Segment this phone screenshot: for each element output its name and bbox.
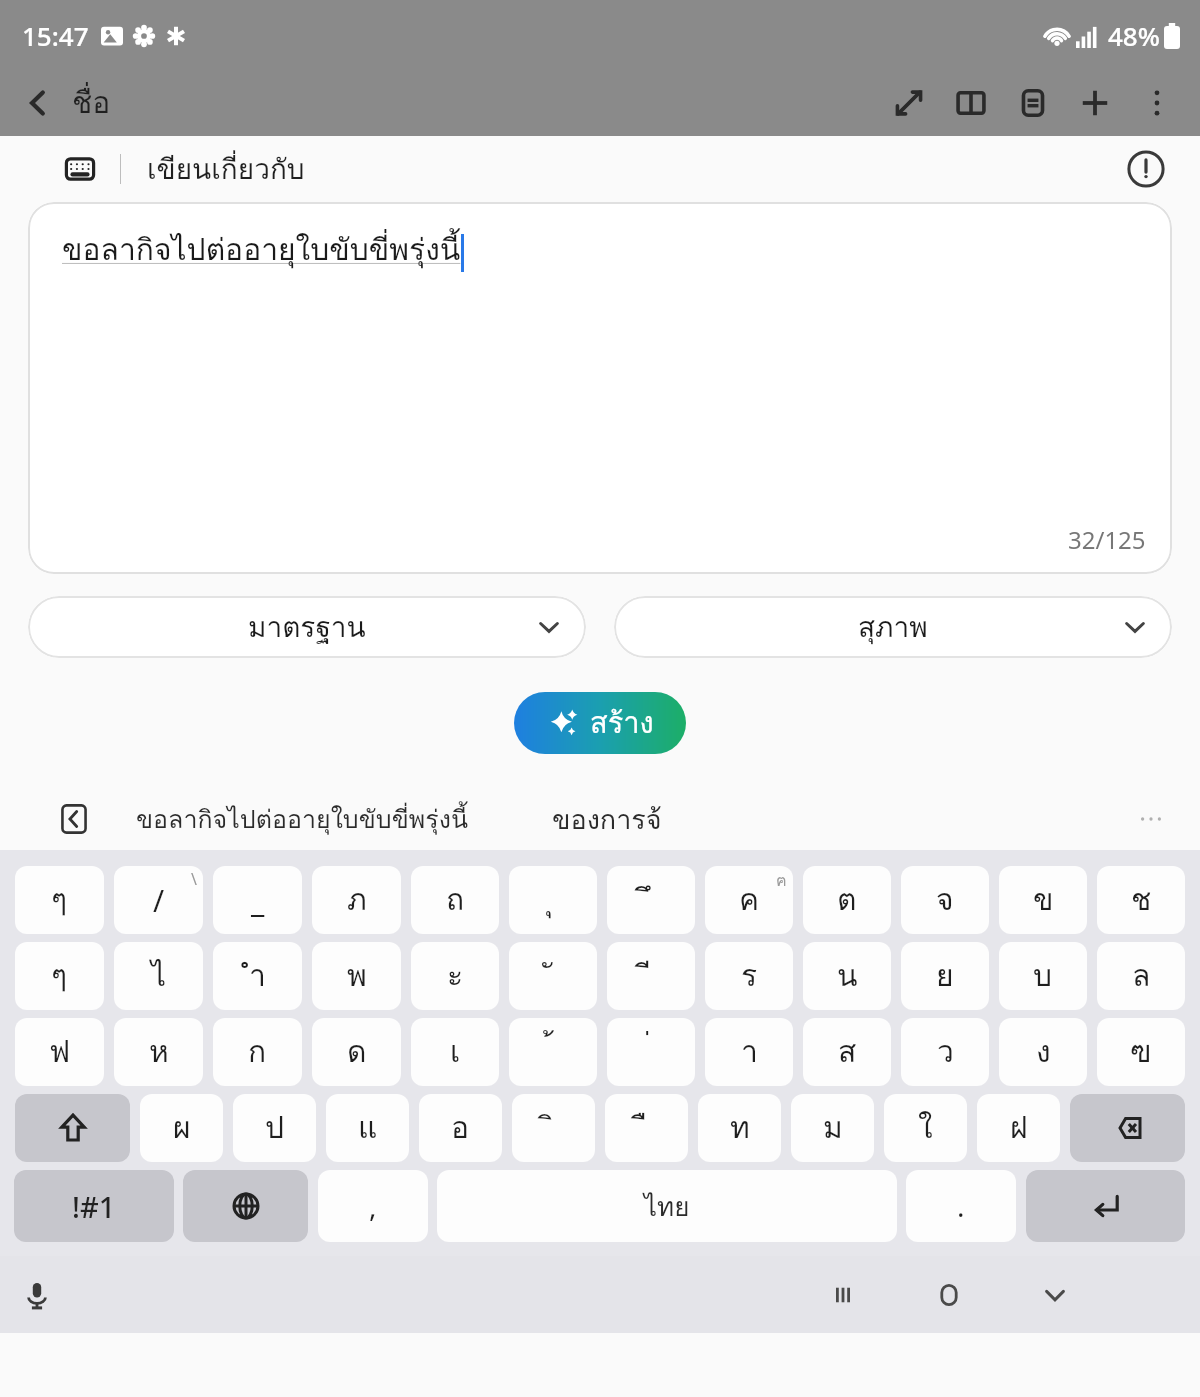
button[interactable]: ฅ [705, 866, 793, 934]
button[interactable]: ุ [509, 866, 597, 934]
button[interactable]: Recent apps [808, 1260, 878, 1330]
button[interactable]: ห [114, 1018, 203, 1086]
button[interactable]: ไทย [437, 1170, 897, 1242]
button[interactable]: สุภาพ [614, 596, 1172, 658]
button[interactable]: Home [914, 1260, 984, 1330]
button[interactable]: Voice input [12, 1270, 62, 1320]
button[interactable]: ใ [884, 1094, 967, 1162]
staticText: _ [251, 880, 265, 921]
staticText: ย [936, 952, 954, 1000]
button[interactable]: ล [1097, 942, 1185, 1010]
button[interactable]: ึ [607, 866, 695, 934]
button[interactable]: ขอลากิจไปต่ออายุใบขับขี่พรุ่งนี้ [136, 799, 468, 839]
button[interactable]: ด [312, 1018, 401, 1086]
button[interactable]: ว [901, 1018, 989, 1086]
staticText: ภ [347, 876, 367, 924]
button[interactable]: _ [213, 866, 302, 934]
button[interactable]: Add [1064, 72, 1126, 134]
button[interactable]: สร้าง [514, 692, 686, 754]
button[interactable]: า [705, 1018, 793, 1086]
button[interactable]: มาตรฐาน [28, 596, 586, 658]
staticText: ๆ [51, 876, 68, 924]
button[interactable]: ต [803, 866, 891, 934]
button[interactable]: ่ [607, 1018, 695, 1086]
button[interactable]: อ [419, 1094, 502, 1162]
button[interactable]: ถ [411, 866, 499, 934]
button[interactable]: ท [698, 1094, 781, 1162]
button[interactable]: ื [605, 1094, 688, 1162]
staticText: เขียนเกี่ยวกับ [147, 147, 305, 192]
button[interactable]: ขอลากิจไปต่ออายุใบขับขี่พรุ่งนี้ [28, 202, 1172, 574]
button[interactable]: , [318, 1170, 428, 1242]
button[interactable]: More options [1126, 72, 1188, 134]
button[interactable]: เ [411, 1018, 499, 1086]
button[interactable]: ำ [213, 942, 302, 1010]
button[interactable]: ไ [114, 942, 203, 1010]
button[interactable]: More suggestions [1126, 794, 1176, 844]
button[interactable]: ส [803, 1018, 891, 1086]
button[interactable]: Back [10, 75, 66, 131]
button[interactable]: Enter [1026, 1170, 1185, 1242]
button[interactable]: ฝ [977, 1094, 1060, 1162]
button[interactable]: ิ [512, 1094, 595, 1162]
staticText: ฟ [49, 1028, 71, 1076]
staticText: ส [838, 1028, 857, 1076]
staticText: ด [347, 1028, 367, 1076]
button[interactable]: Change language [183, 1170, 308, 1242]
staticText: อ [451, 1104, 470, 1152]
button[interactable]: แ [326, 1094, 409, 1162]
button[interactable]: ย [901, 942, 989, 1010]
button[interactable]: พ [312, 942, 401, 1010]
button[interactable]: ง [999, 1018, 1087, 1086]
button[interactable]: ภ [312, 866, 401, 934]
button[interactable]: น [803, 942, 891, 1010]
staticText: ท [730, 1104, 750, 1152]
button[interactable]: ๆ [15, 866, 104, 934]
button[interactable]: ้ [509, 1018, 597, 1086]
button[interactable]: Information [1116, 139, 1176, 199]
button[interactable]: บ [999, 942, 1087, 1010]
button[interactable]: \ [114, 866, 203, 934]
staticText: พ [347, 952, 367, 1000]
staticText: สุภาพ [858, 605, 928, 650]
button[interactable]: ะ [411, 942, 499, 1010]
button[interactable]: Expand [878, 72, 940, 134]
button[interactable]: ป [233, 1094, 316, 1162]
button[interactable]: ฟ [15, 1018, 104, 1086]
staticText: ต [837, 876, 857, 924]
button[interactable]: Hide keyboard [1020, 1260, 1090, 1330]
button[interactable]: ๆ [15, 942, 104, 1010]
button[interactable]: ผ [140, 1094, 223, 1162]
button[interactable]: ั [509, 942, 597, 1010]
staticText: 15:47 [22, 18, 89, 53]
button[interactable]: Shift [15, 1094, 130, 1162]
button[interactable]: ี [607, 942, 695, 1010]
staticText: ถ [446, 876, 465, 924]
staticText: น [837, 952, 858, 1000]
button[interactable]: จ [901, 866, 989, 934]
button[interactable]: ของการจ้ [552, 798, 662, 841]
button[interactable]: ม [791, 1094, 874, 1162]
button[interactable]: List view [1002, 72, 1064, 134]
button[interactable]: Book view [940, 72, 1002, 134]
staticText: ไทย [644, 1186, 690, 1227]
button[interactable]: ช [1097, 866, 1185, 934]
button[interactable]: Previous suggestion [56, 801, 92, 837]
staticText: ม [823, 1104, 843, 1152]
staticText: ฝ [1010, 1104, 1028, 1152]
staticText: , [369, 1187, 377, 1225]
staticText: 32/125 [1068, 523, 1146, 556]
button[interactable]: ก [213, 1018, 302, 1086]
button[interactable]: ข [999, 866, 1087, 934]
staticText: จ [936, 876, 954, 924]
button[interactable]: Backspace [1070, 1094, 1185, 1162]
button[interactable]: ร [705, 942, 793, 1010]
staticText: มาตรฐาน [248, 605, 366, 650]
staticText: 48% [1108, 18, 1160, 53]
staticText: ล [1132, 952, 1151, 1000]
button[interactable]: ฃ [1097, 1018, 1185, 1086]
button[interactable]: Keyboard [58, 147, 102, 191]
staticText: ง [1036, 1028, 1051, 1076]
button[interactable]: !#1 [14, 1170, 174, 1242]
button[interactable]: . [906, 1170, 1016, 1242]
